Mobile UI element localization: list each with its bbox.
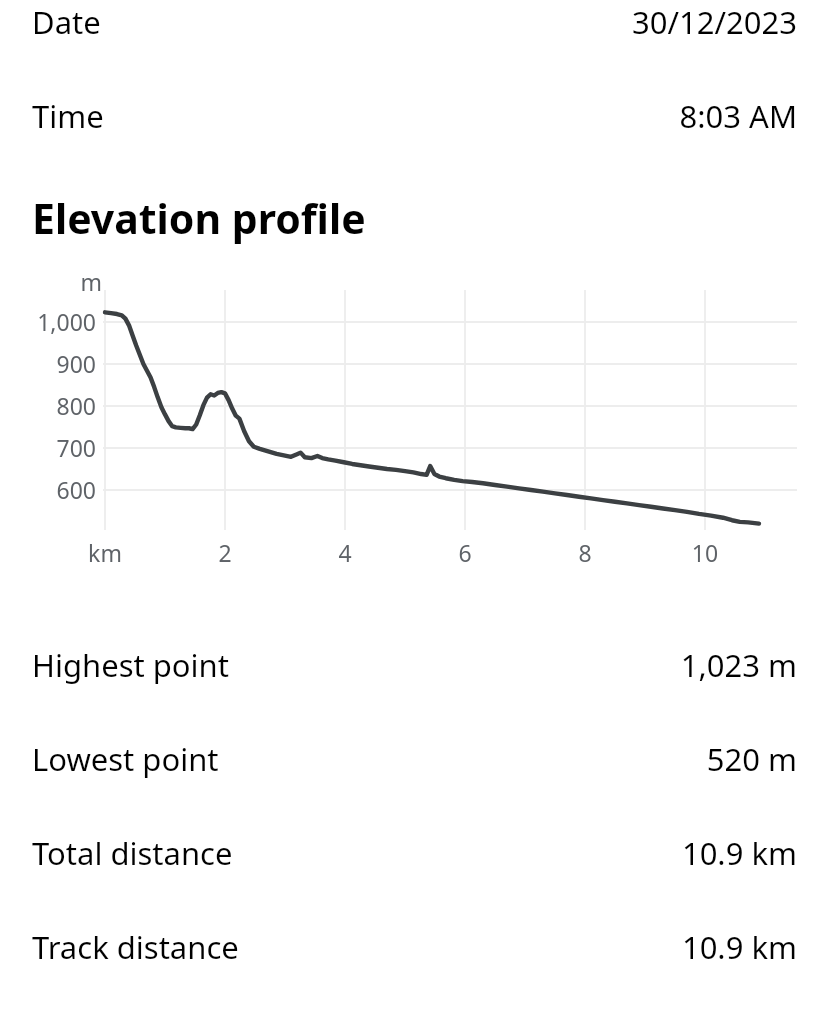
staticText: 700	[0, 432, 96, 463]
staticText: 8	[555, 537, 615, 568]
staticText: 10	[675, 537, 735, 568]
staticText: Elevation profile	[32, 190, 366, 246]
button[interactable]: Time	[0, 83, 829, 149]
button[interactable]: Date	[0, 0, 829, 55]
staticText: km	[75, 537, 135, 568]
staticText: 1,023 m	[680, 644, 797, 686]
staticText: 1,000	[0, 306, 96, 337]
staticText: 10.9 km	[681, 926, 797, 968]
staticText: 30/12/2023	[632, 1, 797, 43]
staticText: 6	[435, 537, 495, 568]
staticText: 4	[315, 537, 375, 568]
staticText: Highest point	[32, 644, 229, 686]
button[interactable]: Track distance	[0, 911, 829, 983]
staticText: Total distance	[32, 832, 233, 874]
staticText: Lowest point	[32, 738, 219, 780]
staticText: Date	[32, 1, 101, 43]
button[interactable]: Lowest point	[0, 723, 829, 795]
staticText: 8:03 AM	[679, 95, 797, 137]
staticText: Track distance	[32, 926, 239, 968]
staticText: 900	[0, 348, 96, 379]
staticText: 10.9 km	[681, 832, 797, 874]
staticText: 800	[0, 390, 96, 421]
staticText: Time	[32, 95, 104, 137]
button[interactable]: Total distance	[0, 817, 829, 889]
button[interactable]: Highest point	[0, 629, 829, 701]
staticText: 520 m	[706, 738, 797, 780]
staticText: 600	[0, 474, 96, 505]
staticText: 2	[195, 537, 255, 568]
staticText: m	[62, 266, 102, 297]
